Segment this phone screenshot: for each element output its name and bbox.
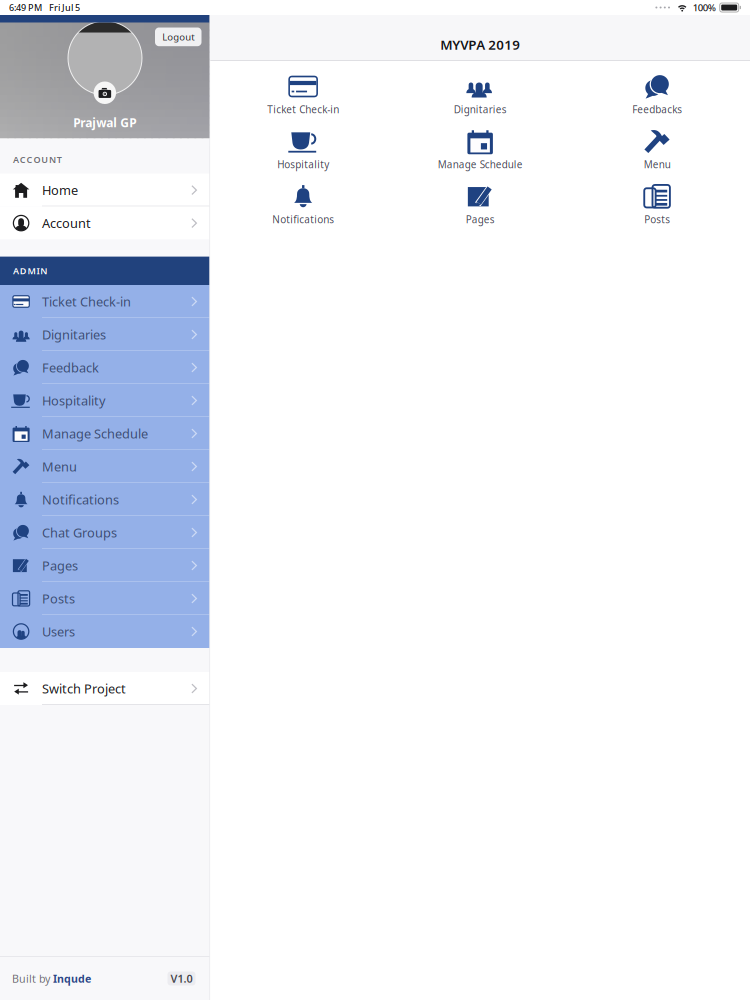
staticText: Manage Schedule: [42, 425, 148, 442]
staticText: Feedbacks: [632, 103, 682, 116]
button[interactable]: Dignitaries: [0, 318, 209, 351]
button[interactable]: Hospitality: [215, 116, 392, 171]
staticText: ADMIN: [13, 265, 47, 277]
staticText: Menu: [42, 458, 77, 475]
staticText: Pages: [42, 557, 78, 574]
staticText: Notifications: [272, 213, 334, 226]
staticText: Users: [42, 623, 75, 640]
button[interactable]: Manage Schedule: [392, 116, 569, 171]
staticText: V1.0: [170, 971, 192, 986]
button[interactable]: Ticket Check-in: [0, 285, 209, 318]
button[interactable]: Notifications: [215, 171, 392, 226]
button[interactable]: Home: [0, 174, 209, 207]
staticText: Built by: [12, 971, 53, 986]
staticText: Notifications: [42, 491, 119, 508]
staticText: Logout: [162, 30, 194, 43]
button[interactable]: Hospitality: [0, 384, 209, 417]
button[interactable]: Menu: [0, 450, 209, 483]
button[interactable]: Manage Schedule: [0, 417, 209, 450]
button[interactable]: Ticket Check-in: [215, 61, 392, 116]
button[interactable]: Pages: [0, 549, 209, 582]
staticText: Chat Groups: [42, 524, 117, 541]
staticText: Hospitality: [277, 158, 329, 171]
staticText: Inqude: [53, 971, 91, 986]
staticText: 6:49 PM: [9, 1, 42, 14]
staticText: 100%: [693, 1, 716, 14]
button[interactable]: Feedbacks: [569, 61, 746, 116]
button[interactable]: Chat Groups: [0, 516, 209, 549]
staticText: Home: [42, 181, 78, 199]
button[interactable]: Posts: [569, 171, 746, 226]
button[interactable]: Account: [0, 207, 209, 240]
staticText: Dignitaries: [42, 326, 106, 343]
button[interactable]: Menu: [569, 116, 746, 171]
button[interactable]: Posts: [0, 582, 209, 615]
staticText: Ticket Check-in: [267, 103, 339, 116]
button[interactable]: Pages: [392, 171, 569, 226]
staticText: Ticket Check-in: [42, 293, 131, 310]
button[interactable]: Notifications: [0, 483, 209, 516]
staticText: Switch Project: [42, 680, 126, 697]
staticText: Feedback: [42, 359, 99, 376]
staticText: MYVPA 2019: [440, 35, 520, 54]
staticText: Pages: [466, 213, 495, 226]
staticText: Hospitality: [42, 392, 106, 409]
staticText: Posts: [42, 590, 75, 607]
staticText: Manage Schedule: [438, 158, 523, 171]
staticText: Posts: [644, 213, 670, 226]
button[interactable]: Switch Project: [0, 672, 209, 705]
staticText: Account: [42, 214, 91, 232]
staticText: ACCOUNT: [13, 153, 62, 166]
staticText: Fri Jul 5: [49, 1, 80, 14]
button[interactable]: Logout: [155, 27, 201, 46]
button[interactable]: Dignitaries: [392, 61, 569, 116]
button[interactable]: Feedback: [0, 351, 209, 384]
button[interactable]: Users: [0, 615, 209, 648]
staticText: Menu: [644, 158, 671, 171]
staticText: Dignitaries: [454, 103, 507, 116]
staticText: Prajwal GP: [73, 114, 136, 131]
